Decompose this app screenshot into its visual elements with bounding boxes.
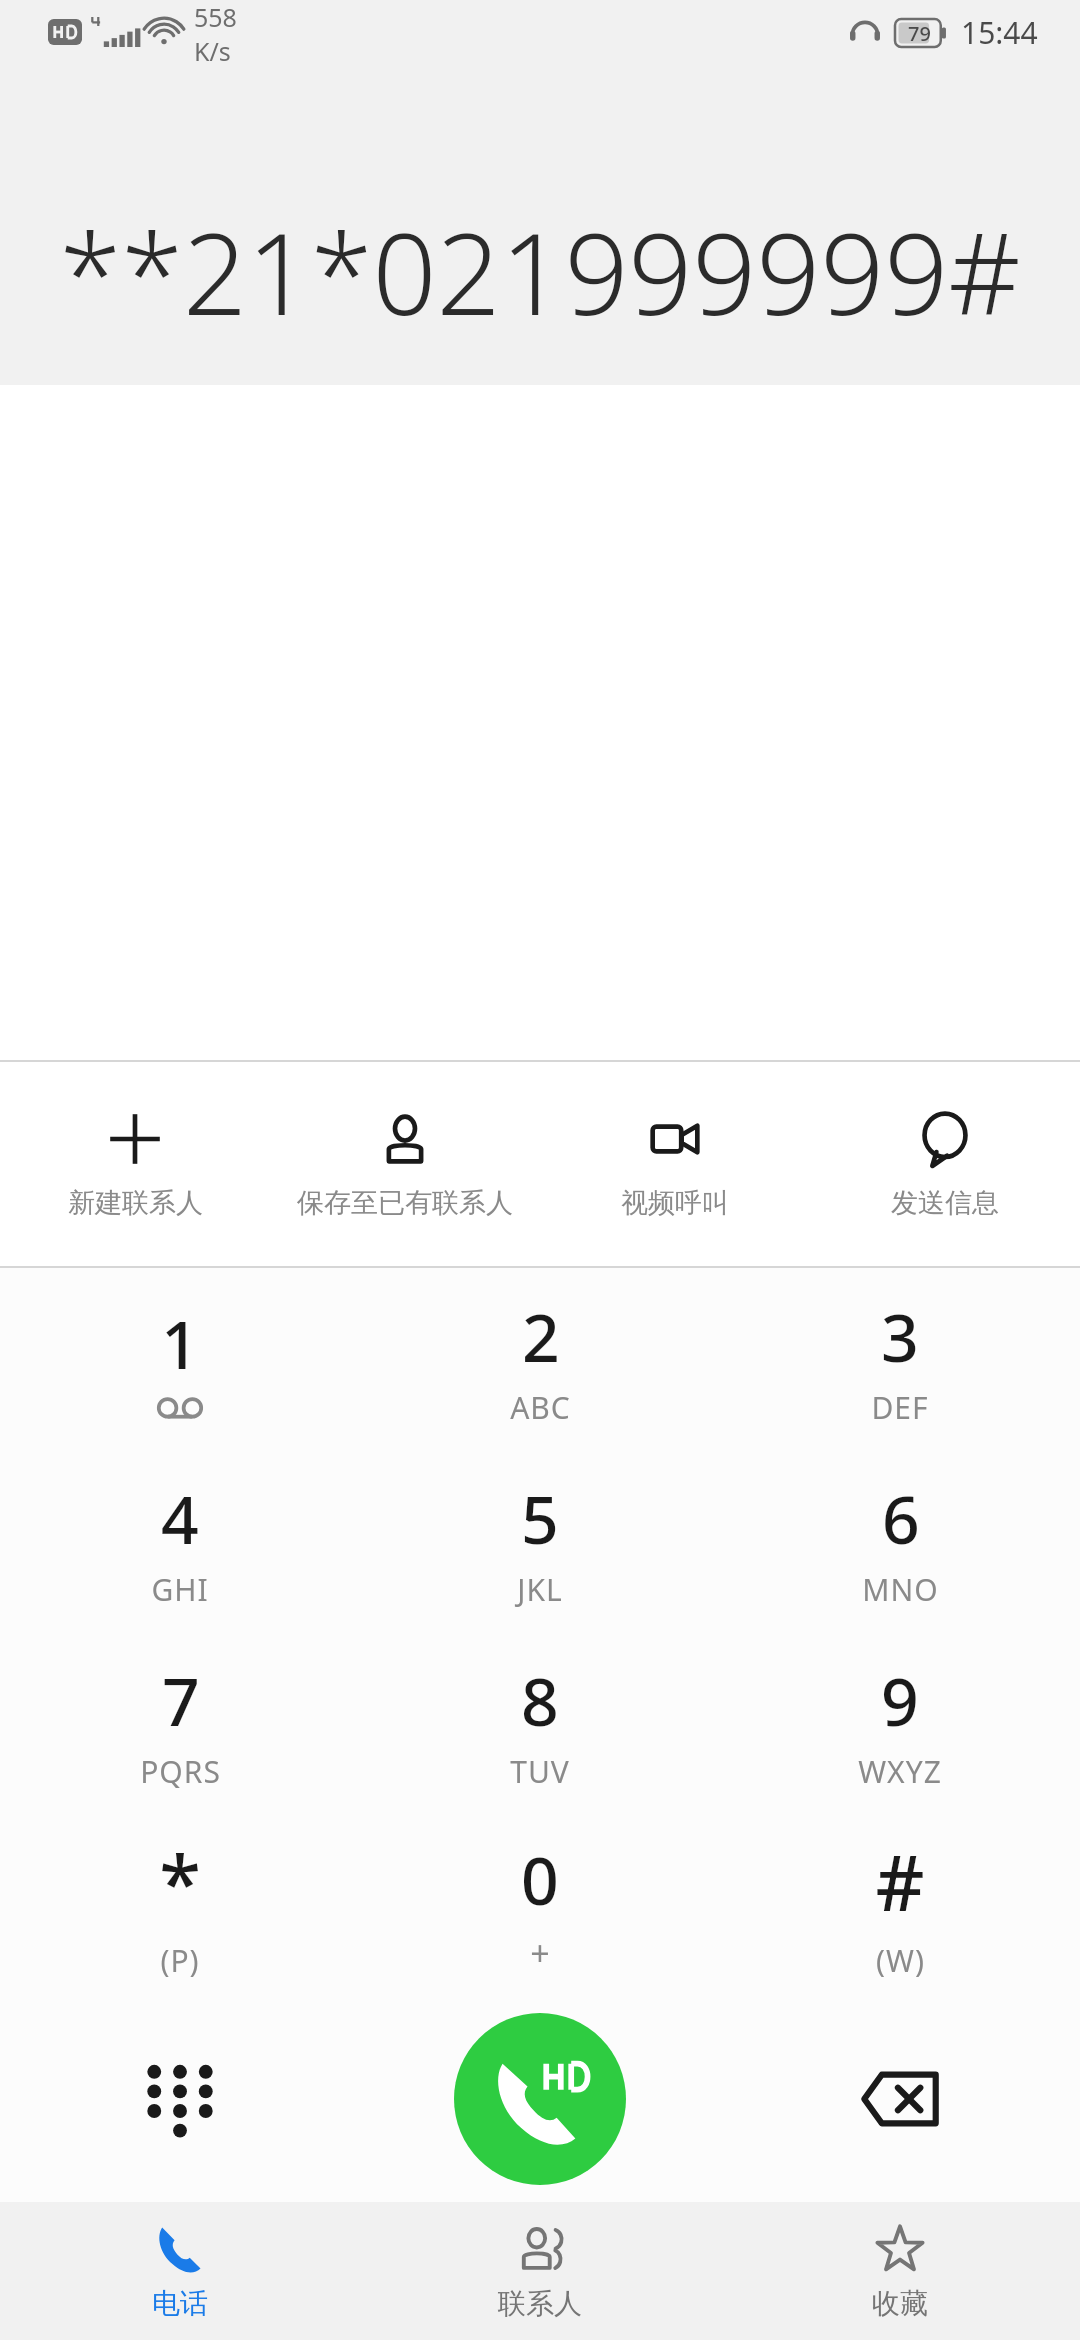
staticText: 558 [194, 0, 237, 34]
staticText: 0 [521, 1834, 559, 1924]
staticText: K/s [194, 34, 231, 64]
button[interactable]: 保存至已有联系人 [270, 1094, 540, 1234]
button[interactable]: 联系人 [360, 2202, 720, 2340]
button[interactable]: 新建联系人 [0, 1094, 270, 1234]
staticText: # [875, 1830, 925, 1934]
staticText: 发送信息 [891, 1186, 999, 1220]
staticText: 收藏 [872, 2286, 928, 2321]
staticText: DEF [871, 1387, 929, 1428]
staticText: 7 [162, 1655, 200, 1745]
staticText: 视频呼叫 [621, 1186, 729, 1220]
button[interactable]: 收藏 [720, 2202, 1080, 2340]
button[interactable]: 电话 [0, 2202, 360, 2340]
button[interactable]: * [0, 1814, 360, 1996]
button[interactable]: 2 [360, 1268, 720, 1450]
staticText: 新建联系人 [68, 1186, 203, 1220]
staticText: GHI [151, 1569, 209, 1610]
staticText: * [159, 1830, 201, 1934]
staticText: PQRS [140, 1751, 221, 1792]
button[interactable]: Backspace [720, 1996, 1080, 2202]
button[interactable]: 4 [0, 1450, 360, 1632]
button[interactable]: 视频呼叫 [540, 1094, 810, 1234]
staticText: 8 [521, 1655, 559, 1745]
staticText: (W) [876, 1940, 925, 1981]
staticText: 联系人 [498, 2286, 582, 2321]
button[interactable]: 5 [360, 1450, 720, 1632]
staticText: 电话 [152, 2286, 208, 2321]
button[interactable]: 0 [360, 1814, 720, 1996]
button[interactable]: 3 [720, 1268, 1080, 1450]
staticText: 3 [881, 1291, 919, 1381]
button[interactable]: 1 [0, 1268, 360, 1450]
staticText: 9 [881, 1655, 919, 1745]
button[interactable]: # [720, 1814, 1080, 1996]
button[interactable]: 6 [720, 1450, 1080, 1632]
staticText: 2 [522, 1291, 560, 1381]
staticText: **21*021999999# [0, 195, 1080, 348]
staticText: (P) [160, 1940, 200, 1981]
staticText: 保存至已有联系人 [297, 1186, 513, 1220]
button[interactable]: 7 [0, 1632, 360, 1814]
staticText: MNO [862, 1569, 939, 1610]
staticText: 79 [908, 20, 931, 47]
staticText: ABC [510, 1387, 571, 1428]
staticText: 4 [161, 1473, 199, 1563]
button[interactable]: 发送信息 [810, 1094, 1080, 1234]
staticText: 5 [521, 1473, 559, 1563]
button[interactable]: 8 [360, 1632, 720, 1814]
button[interactable]: 9 [720, 1632, 1080, 1814]
staticText: JKL [517, 1569, 563, 1610]
button[interactable]: Call [360, 1996, 720, 2202]
staticText: 6 [882, 1473, 920, 1563]
staticText: + [530, 1930, 551, 1976]
staticText: TUV [510, 1751, 570, 1792]
staticText: WXYZ [858, 1751, 942, 1792]
button[interactable]: Dialpad [0, 1996, 360, 2202]
staticText: 15:44 [961, 12, 1038, 53]
staticText: 1 [161, 1298, 199, 1388]
